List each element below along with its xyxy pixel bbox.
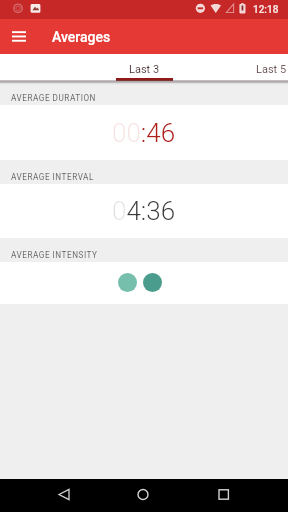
staticText: AVERAGE DURATION xyxy=(11,93,96,103)
staticText: AVERAGE INTENSITY xyxy=(11,250,98,260)
staticText: 12:18 xyxy=(253,4,279,16)
staticText: 00:46 xyxy=(112,118,176,148)
staticText: Last 5 xyxy=(256,63,287,76)
staticText: Averages xyxy=(52,29,111,45)
staticText: Last 3 xyxy=(129,63,160,76)
button[interactable]: Last 3 xyxy=(87,54,202,81)
staticText: AVERAGE INTERVAL xyxy=(11,172,94,182)
staticText: 04:36 xyxy=(112,196,176,226)
button[interactable]: Last 5 xyxy=(214,54,288,81)
button[interactable]: Open navigation menu xyxy=(7,25,31,49)
